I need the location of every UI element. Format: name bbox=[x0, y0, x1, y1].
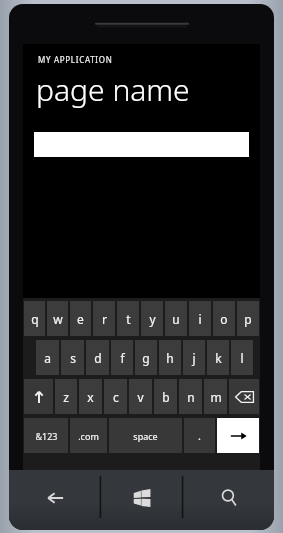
staticText: u bbox=[172, 311, 180, 327]
button[interactable]: Back bbox=[9, 470, 101, 530]
button[interactable]: . bbox=[184, 418, 215, 453]
staticText: t bbox=[126, 311, 131, 327]
button[interactable]: Key bbox=[24, 379, 53, 414]
button[interactable]: &123 bbox=[24, 418, 68, 453]
button[interactable]: y bbox=[141, 301, 163, 336]
button[interactable]: s bbox=[61, 340, 84, 375]
staticText: x bbox=[87, 389, 94, 405]
staticText: l bbox=[240, 350, 244, 366]
button[interactable]: v bbox=[129, 379, 152, 414]
staticText: f bbox=[120, 350, 125, 366]
staticText: . bbox=[198, 428, 201, 443]
button[interactable]: Search bbox=[183, 470, 274, 530]
button[interactable]: h bbox=[159, 340, 181, 375]
button[interactable]: t bbox=[117, 301, 139, 336]
staticText: r bbox=[102, 311, 107, 327]
button[interactable]: w bbox=[47, 301, 68, 336]
button[interactable]: o bbox=[213, 301, 235, 336]
staticText: e bbox=[77, 311, 84, 327]
button[interactable]: b bbox=[154, 379, 177, 414]
staticText: c bbox=[113, 389, 119, 405]
button[interactable]: c bbox=[104, 379, 127, 414]
button[interactable]: g bbox=[135, 340, 157, 375]
staticText: space bbox=[133, 430, 158, 442]
staticText: page name bbox=[36, 69, 190, 110]
staticText: .com bbox=[78, 430, 99, 442]
button[interactable]: k bbox=[207, 340, 229, 375]
staticText: j bbox=[192, 350, 196, 366]
staticText: w bbox=[53, 311, 63, 327]
staticText: q bbox=[31, 311, 39, 327]
button[interactable]: e bbox=[70, 301, 91, 336]
button[interactable]: l bbox=[231, 340, 253, 375]
staticText: p bbox=[244, 311, 252, 327]
button[interactable]: n bbox=[179, 379, 202, 414]
staticText: k bbox=[215, 350, 222, 366]
staticText: MY APPLICATION bbox=[38, 54, 113, 65]
button[interactable]: Home bbox=[101, 470, 183, 530]
button[interactable]: x bbox=[79, 379, 102, 414]
button[interactable]: a bbox=[36, 340, 59, 375]
button[interactable]: p bbox=[237, 301, 259, 336]
button[interactable]: r bbox=[93, 301, 115, 336]
button[interactable]: i bbox=[189, 301, 211, 336]
button[interactable]: Enter bbox=[217, 418, 259, 453]
other: Shift bbox=[32, 390, 46, 404]
staticText: m bbox=[210, 389, 222, 405]
staticText: &123 bbox=[35, 430, 58, 442]
button[interactable]: f bbox=[111, 340, 133, 375]
staticText: o bbox=[220, 311, 228, 327]
staticText: d bbox=[94, 350, 102, 366]
staticText: n bbox=[187, 389, 195, 405]
button[interactable]: j bbox=[183, 340, 205, 375]
button[interactable]: z bbox=[55, 379, 77, 414]
button[interactable]: q bbox=[24, 301, 45, 336]
button[interactable]: space bbox=[109, 418, 182, 453]
button[interactable]: .com bbox=[70, 418, 107, 453]
staticText: v bbox=[137, 389, 144, 405]
button[interactable]: u bbox=[165, 301, 187, 336]
staticText: i bbox=[198, 311, 202, 327]
other: Backspace bbox=[235, 391, 254, 403]
staticText: y bbox=[149, 311, 156, 327]
staticText: g bbox=[142, 350, 150, 366]
button[interactable]: m bbox=[204, 379, 227, 414]
staticText: z bbox=[63, 389, 69, 405]
staticText: s bbox=[70, 350, 76, 366]
staticText: a bbox=[44, 350, 51, 366]
staticText: h bbox=[166, 350, 174, 366]
staticText: b bbox=[162, 389, 170, 405]
button[interactable]: Key bbox=[229, 379, 259, 414]
button[interactable]: d bbox=[86, 340, 109, 375]
